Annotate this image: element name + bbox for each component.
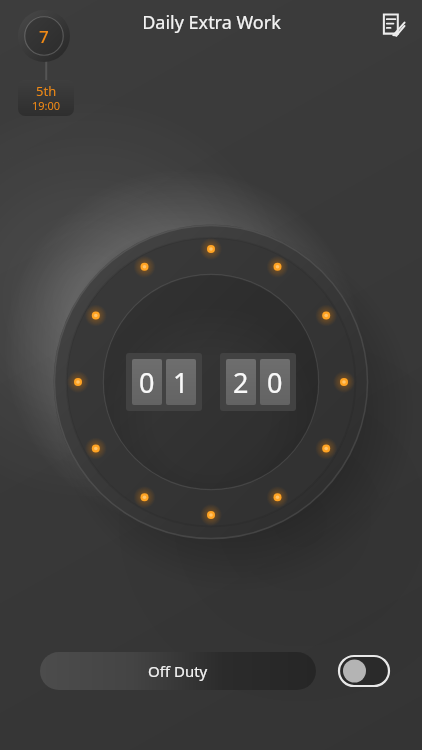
button[interactable]: Edit notes: [372, 4, 414, 46]
button[interactable]: 5th: [18, 80, 74, 116]
staticText: 5th: [36, 82, 57, 100]
staticText: 7: [39, 25, 49, 48]
button[interactable]: Duty toggle, off: [338, 655, 390, 687]
button[interactable]: Day 7: [18, 10, 70, 62]
staticText: 1: [173, 364, 189, 401]
staticText: Daily Extra Work: [142, 10, 281, 35]
staticText: 0: [267, 364, 283, 401]
staticText: 19:00: [32, 98, 61, 113]
staticText: 0: [139, 364, 155, 401]
button[interactable]: Timer dial 01:20: [36, 207, 386, 557]
button[interactable]: Off Duty: [40, 652, 316, 690]
staticText: 2: [233, 364, 249, 401]
staticText: Off Duty: [148, 661, 208, 681]
